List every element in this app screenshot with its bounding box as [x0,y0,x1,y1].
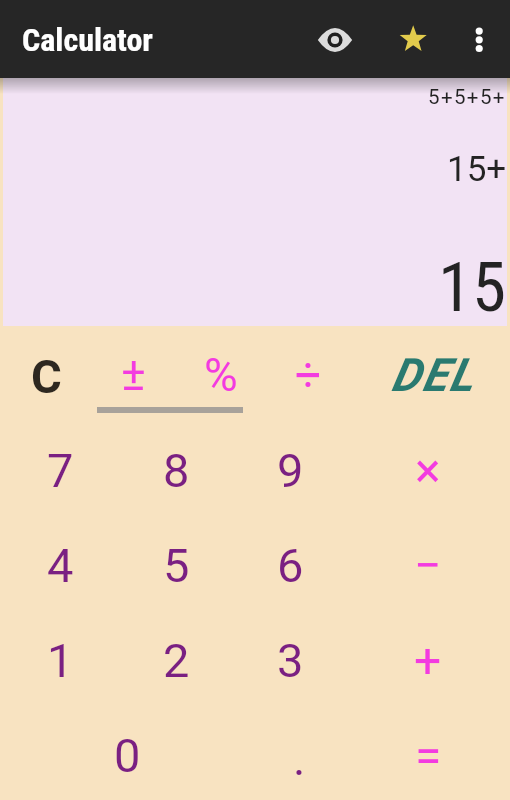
staticText: ÷ [295,348,322,402]
button[interactable]: 7 [15,425,105,515]
staticText: 15+ [447,149,507,190]
button[interactable]: × [383,425,473,515]
button[interactable]: 4 [15,520,105,610]
staticText: . [293,731,306,786]
staticText: 5 [163,538,190,593]
staticText: DEL [391,348,476,402]
staticText: 1 [47,633,74,688]
staticText: 15 [438,247,507,328]
button[interactable]: + [383,615,473,705]
button[interactable] [455,16,502,63]
staticText: × [415,442,441,498]
button[interactable]: 6 [245,520,335,610]
button[interactable]: ± [88,329,178,419]
staticText: − [414,537,442,593]
staticText: 4 [47,538,74,593]
button[interactable]: 1 [15,615,105,705]
staticText: ± [121,347,146,401]
button[interactable]: . [254,713,344,800]
button[interactable]: % [176,330,266,420]
button[interactable]: 9 [245,425,335,515]
staticText: % [204,348,238,402]
button[interactable]: ÷ [263,330,353,420]
button[interactable]: − [383,520,473,610]
staticText: + [414,632,442,688]
staticText: 7 [47,443,74,498]
staticText: 5+5+5+ [428,85,506,109]
button[interactable]: Calculator [22,21,153,59]
button[interactable] [389,16,437,64]
staticText: 3 [277,633,304,688]
button[interactable]: 2 [131,615,221,705]
button[interactable]: 3 [245,615,335,705]
staticText: C [31,349,62,404]
button[interactable]: 0 [37,710,217,800]
button[interactable]: 8 [131,425,221,515]
staticText: 6 [277,538,304,593]
staticText: 0 [114,728,141,783]
staticText: 2 [163,633,190,688]
button[interactable]: = [383,710,473,800]
staticText: = [415,727,442,783]
button[interactable] [311,16,359,64]
button[interactable]: DEL [378,330,488,420]
button[interactable]: 5 [131,520,221,610]
button[interactable]: C [1,331,91,421]
staticText: 9 [277,443,304,498]
staticText: 8 [163,443,190,498]
staticText: Calculator [22,21,153,59]
